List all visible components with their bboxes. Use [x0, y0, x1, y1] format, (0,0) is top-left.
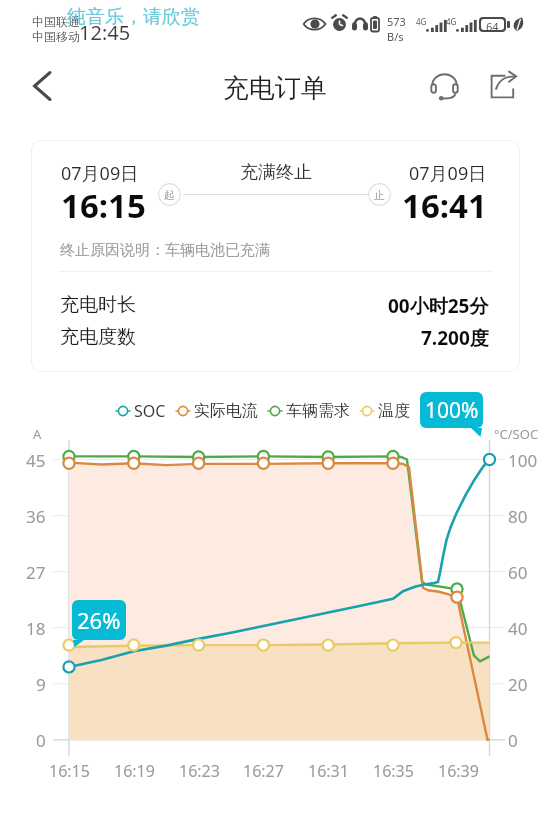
staticText: °C/SOC: [494, 425, 539, 443]
staticText: 0: [36, 729, 46, 752]
staticText: 充电订单: [223, 72, 327, 105]
staticText: 起: [164, 188, 175, 202]
staticText: 573: [387, 14, 406, 29]
staticText: 07月09日: [61, 161, 139, 186]
staticText: 充电度数: [60, 325, 136, 349]
staticText: 0: [508, 729, 518, 752]
staticText: 中国联通: [32, 14, 80, 29]
staticText: 45: [26, 449, 46, 472]
staticText: 4G: [446, 16, 457, 27]
staticText: 16:35: [373, 760, 414, 782]
staticText: 16:31: [308, 760, 349, 782]
staticText: 18: [26, 617, 46, 640]
staticText: 40: [508, 617, 528, 640]
staticText: 16:27: [243, 760, 284, 782]
staticText: 终止原因说明：车辆电池已充满: [60, 241, 270, 260]
staticText: 36: [26, 505, 46, 528]
staticText: 100%: [425, 396, 479, 425]
button[interactable]: 温度: [359, 401, 410, 421]
staticText: 12:45: [79, 19, 131, 46]
staticText: 07月09日: [409, 161, 487, 186]
staticText: 4G: [416, 16, 427, 27]
staticText: 车辆需求: [286, 401, 350, 421]
button[interactable]: 实际电流: [175, 401, 258, 421]
staticText: 16:41: [402, 183, 487, 228]
staticText: 7.200度: [421, 325, 489, 351]
staticText: 60: [508, 561, 528, 584]
staticText: 00小时25分: [388, 293, 489, 319]
staticText: 80: [508, 505, 528, 528]
staticText: 16:15: [49, 760, 90, 782]
staticText: 16:39: [438, 760, 479, 782]
staticText: 纯音乐，请欣赏: [67, 5, 200, 29]
staticText: 中国移动: [32, 29, 80, 44]
staticText: 100: [508, 449, 538, 472]
staticText: SOC: [134, 400, 166, 422]
staticText: 温度: [378, 401, 410, 421]
staticText: 20: [508, 673, 528, 696]
staticText: 充电时长: [60, 293, 136, 317]
button[interactable]: SOC: [115, 400, 166, 422]
staticText: B/s: [387, 29, 404, 44]
staticText: 64: [486, 19, 499, 30]
staticText: 16:15: [61, 183, 146, 228]
button[interactable]: 分享: [482, 65, 524, 107]
button[interactable]: 客服: [422, 63, 466, 107]
staticText: 实际电流: [194, 401, 258, 421]
staticText: 16:19: [114, 760, 155, 782]
staticText: 27: [26, 561, 46, 584]
staticText: 16:23: [179, 760, 220, 782]
staticText: 充满终止: [240, 161, 312, 184]
button[interactable]: 车辆需求: [267, 401, 350, 421]
staticText: 9: [36, 673, 46, 696]
staticText: A: [33, 425, 42, 443]
staticText: 26%: [77, 605, 121, 635]
staticText: 止: [374, 188, 385, 202]
button[interactable]: 返回: [14, 58, 70, 114]
